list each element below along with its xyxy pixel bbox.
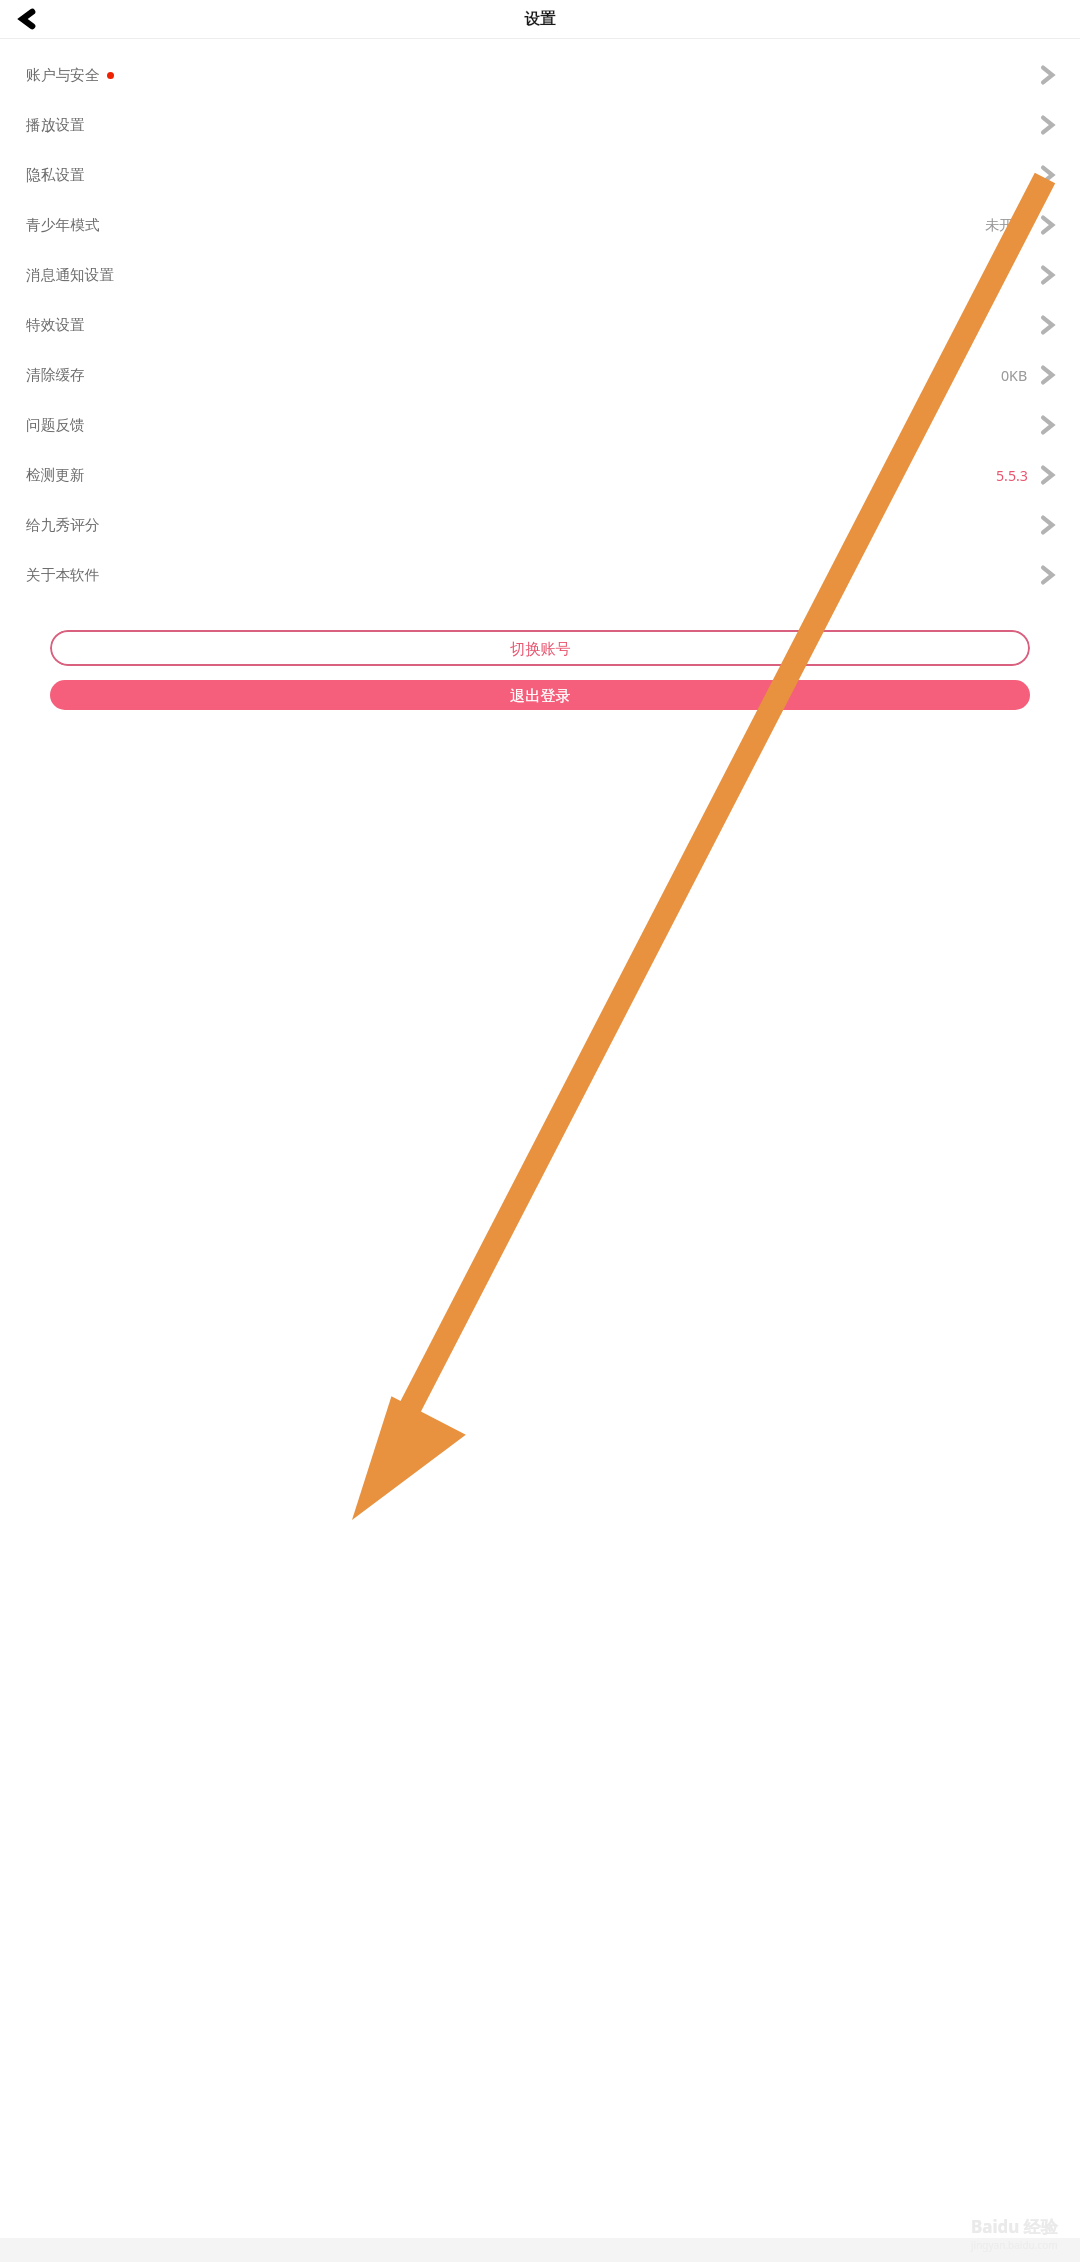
button[interactable]: 清除缓存 <box>0 350 1080 400</box>
staticText: 青少年模式 <box>26 216 100 235</box>
button[interactable]: 切换账号 <box>50 630 1030 666</box>
button[interactable]: 隐私设置 <box>0 150 1080 200</box>
button[interactable]: 给九秀评分 <box>0 500 1080 550</box>
staticText: 关于本软件 <box>26 566 100 585</box>
staticText: 未开启 <box>985 216 1028 234</box>
button[interactable]: 检测更新 <box>0 450 1080 500</box>
staticText: 设置 <box>524 9 556 29</box>
button[interactable]: 特效设置 <box>0 300 1080 350</box>
staticText: 切换账号 <box>510 639 571 658</box>
staticText: 消息通知设置 <box>26 266 115 285</box>
staticText: 检测更新 <box>26 466 85 485</box>
staticText: 问题反馈 <box>26 416 85 435</box>
staticText: 清除缓存 <box>26 366 85 385</box>
staticText: 给九秀评分 <box>26 516 100 535</box>
staticText: 隐私设置 <box>26 166 85 185</box>
button[interactable]: 播放设置 <box>0 100 1080 150</box>
button[interactable]: 退出登录 <box>50 680 1030 710</box>
button[interactable]: Back <box>8 1 44 37</box>
staticText: 退出登录 <box>510 686 571 705</box>
button[interactable]: 关于本软件 <box>0 550 1080 600</box>
staticText: 0KB <box>1001 366 1028 385</box>
button[interactable]: 账户与安全 <box>0 50 1080 100</box>
staticText: Baidu 经验 <box>971 2215 1058 2238</box>
staticText: 特效设置 <box>26 316 85 335</box>
staticText: 账户与安全 <box>26 66 100 85</box>
staticText: 播放设置 <box>26 116 85 135</box>
button[interactable]: 青少年模式 <box>0 200 1080 250</box>
staticText: 5.5.3 <box>996 466 1028 485</box>
button[interactable]: 问题反馈 <box>0 400 1080 450</box>
button[interactable]: 消息通知设置 <box>0 250 1080 300</box>
